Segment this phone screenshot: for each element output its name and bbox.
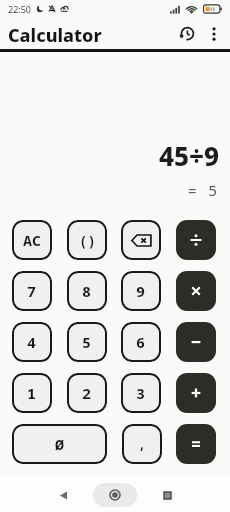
staticText: AC bbox=[23, 230, 42, 250]
staticText: 5 bbox=[82, 332, 92, 352]
button[interactable] bbox=[100, 480, 130, 510]
staticText: , bbox=[138, 435, 146, 453]
button[interactable]: Ø bbox=[12, 424, 107, 464]
staticText: 1 bbox=[27, 383, 37, 403]
button[interactable]: 2 bbox=[67, 373, 107, 413]
staticText: 22:50 bbox=[8, 3, 32, 15]
button[interactable]: , bbox=[122, 424, 162, 464]
button[interactable] bbox=[121, 220, 161, 260]
button[interactable] bbox=[176, 220, 216, 260]
staticText: = 5 bbox=[188, 180, 217, 200]
button[interactable] bbox=[176, 373, 216, 413]
button[interactable]: 5 bbox=[67, 322, 107, 362]
staticText: 45÷9 bbox=[159, 138, 220, 173]
staticText: Calculator bbox=[8, 23, 102, 48]
button[interactable]: 1 bbox=[12, 373, 52, 413]
staticText: 4 bbox=[27, 332, 37, 352]
staticText: 8 bbox=[82, 281, 92, 301]
button[interactable]: 6 bbox=[121, 322, 161, 362]
button[interactable] bbox=[176, 23, 198, 45]
button[interactable]: 3 bbox=[121, 373, 161, 413]
button[interactable]: 9 bbox=[121, 271, 161, 311]
button[interactable] bbox=[48, 480, 78, 510]
button[interactable] bbox=[152, 480, 182, 510]
staticText: 7 bbox=[27, 281, 37, 301]
button[interactable] bbox=[207, 23, 221, 45]
button[interactable] bbox=[176, 322, 216, 362]
staticText: 6 bbox=[136, 332, 146, 352]
button[interactable]: 7 bbox=[12, 271, 52, 311]
staticText: Ø bbox=[55, 434, 65, 454]
staticText: 2 bbox=[82, 383, 92, 403]
button[interactable]: AC bbox=[12, 220, 52, 260]
staticText: () bbox=[79, 231, 96, 250]
staticText: 9 bbox=[136, 281, 146, 301]
staticText: 3 bbox=[136, 383, 146, 403]
button[interactable] bbox=[176, 271, 216, 311]
button[interactable]: () bbox=[67, 220, 107, 260]
button[interactable]: 4 bbox=[12, 322, 52, 362]
button[interactable] bbox=[176, 424, 216, 464]
button[interactable]: 8 bbox=[67, 271, 107, 311]
